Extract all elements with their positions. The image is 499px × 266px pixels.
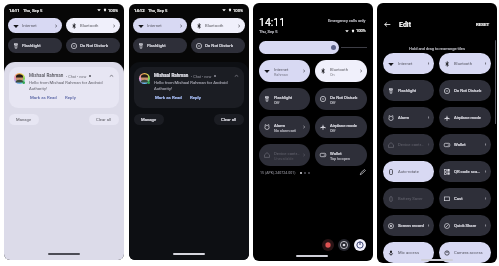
button[interactable]: Bluetooth bbox=[66, 18, 120, 33]
button[interactable]: Flashlight bbox=[259, 88, 310, 110]
staticText: Mishaal Rahman bbox=[154, 73, 189, 78]
button[interactable]: Mishaal Rahman bbox=[134, 67, 244, 108]
staticText: Alarm bbox=[274, 123, 286, 128]
staticText: Edit bbox=[399, 21, 411, 29]
button[interactable]: Flashlight bbox=[383, 80, 434, 101]
staticText: Alarm bbox=[398, 115, 410, 120]
staticText: Cast bbox=[454, 196, 463, 201]
button[interactable]: Do Not Disturb bbox=[66, 38, 120, 53]
button[interactable]: Mark as Read bbox=[155, 95, 182, 100]
staticText: Wallet bbox=[330, 151, 342, 156]
button[interactable]: Internet bbox=[383, 53, 434, 74]
button[interactable]: Record bbox=[322, 239, 334, 251]
staticText: Flashlight bbox=[274, 95, 293, 100]
staticText: Bluetooth bbox=[80, 23, 99, 28]
staticText: • Chat • now bbox=[66, 74, 87, 78]
button[interactable]: Flashlight bbox=[133, 38, 187, 53]
button[interactable]: Airplane mode bbox=[315, 116, 367, 138]
staticText: Internet bbox=[398, 61, 413, 66]
button[interactable]: Power bbox=[354, 239, 366, 251]
button[interactable]: Alarm bbox=[383, 107, 434, 128]
staticText: Clear all bbox=[96, 117, 112, 122]
button[interactable]: Screen record bbox=[383, 215, 434, 236]
button[interactable]: Clear all bbox=[89, 114, 119, 125]
button[interactable]: Reply bbox=[190, 95, 201, 100]
staticText: Reply bbox=[190, 95, 201, 100]
button[interactable]: Bluetooth bbox=[315, 60, 367, 82]
button[interactable]: Battery Saver bbox=[383, 188, 434, 209]
staticText: Battery Saver bbox=[398, 196, 423, 201]
button[interactable]: Internet bbox=[133, 18, 187, 33]
staticText: Do Not Disturb bbox=[330, 95, 358, 100]
staticText: Mark as Read bbox=[155, 95, 182, 100]
staticText: Wallet bbox=[454, 142, 466, 147]
staticText: Mishaal Rahman bbox=[29, 73, 64, 78]
staticText: QR code sca… bbox=[454, 169, 481, 174]
button[interactable]: Airplane mode bbox=[439, 107, 491, 128]
button[interactable]: Bluetooth bbox=[439, 53, 491, 74]
staticText: Tap to open bbox=[330, 156, 350, 160]
button[interactable]: Do Not Disturb bbox=[439, 80, 491, 101]
staticText: 100% bbox=[108, 8, 119, 13]
button[interactable]: Quick Share bbox=[439, 215, 491, 236]
staticText: No alarm set bbox=[274, 128, 296, 132]
button[interactable]: Bluetooth bbox=[191, 18, 245, 33]
staticText: 14:12 bbox=[134, 8, 145, 13]
button[interactable]: Cast bbox=[439, 188, 491, 209]
button[interactable] bbox=[259, 41, 339, 54]
staticText: 100% bbox=[233, 8, 244, 13]
staticText: Off bbox=[330, 100, 336, 104]
staticText: RESET bbox=[476, 22, 490, 27]
button[interactable]: Do Not Disturb bbox=[191, 38, 245, 53]
staticText: Screen record bbox=[398, 223, 424, 228]
button[interactable]: Edit tiles bbox=[359, 169, 366, 176]
staticText: Internet bbox=[274, 67, 289, 72]
button[interactable]: Manage bbox=[9, 114, 39, 125]
staticText: 14:11 bbox=[259, 16, 286, 28]
staticText: Do Not Disturb bbox=[80, 43, 109, 48]
button[interactable]: Mark as Read bbox=[30, 95, 57, 100]
staticText: Airplane mode bbox=[330, 123, 358, 128]
button[interactable]: Wallet bbox=[439, 134, 491, 155]
button[interactable]: Device contr… bbox=[259, 144, 310, 166]
staticText: Quick Share bbox=[454, 223, 477, 228]
button[interactable]: Internet bbox=[8, 18, 62, 33]
button[interactable]: Alarm bbox=[259, 116, 310, 138]
staticText: Thu, Sep 5 bbox=[23, 8, 43, 13]
button[interactable]: Mic access bbox=[383, 242, 434, 263]
staticText: Unavailable bbox=[274, 156, 294, 160]
button[interactable]: Device contr… bbox=[383, 134, 434, 155]
staticText: Hello from Mishaal Rahman for Android Au… bbox=[154, 80, 232, 91]
button[interactable]: Manage bbox=[134, 114, 164, 125]
staticText: Mark as Read bbox=[30, 95, 57, 100]
staticText: Flashlight bbox=[398, 88, 417, 93]
staticText: Clear all bbox=[221, 117, 237, 122]
staticText: Manage bbox=[16, 117, 32, 122]
button[interactable]: Wallet bbox=[315, 144, 367, 166]
button[interactable]: Reply bbox=[65, 95, 76, 100]
button[interactable]: Flashlight bbox=[8, 38, 62, 53]
staticText: Manage bbox=[141, 117, 157, 122]
button[interactable]: Camera access bbox=[439, 242, 491, 263]
staticText: Bluetooth bbox=[205, 23, 224, 28]
staticText: Hold and drag to rearrange tiles bbox=[377, 46, 497, 51]
button[interactable]: QR code sca… bbox=[439, 161, 491, 182]
staticText: 14:11 bbox=[9, 8, 20, 13]
staticText: Flashlight bbox=[147, 43, 166, 48]
button[interactable]: Mishaal Rahman bbox=[9, 67, 119, 108]
staticText: Do Not Disturb bbox=[205, 43, 234, 48]
button[interactable]: Auto-rotate bbox=[383, 161, 434, 182]
staticText: Do Not Disturb bbox=[454, 88, 482, 93]
staticText: Camera access bbox=[454, 250, 483, 255]
staticText: Device contr… bbox=[274, 151, 300, 156]
button[interactable]: Back bbox=[383, 20, 392, 29]
staticText: Device contr… bbox=[398, 142, 424, 147]
staticText: Reply bbox=[65, 95, 76, 100]
button[interactable]: Clear all bbox=[214, 114, 244, 125]
staticText: 15 (APK(.240724.001) bbox=[260, 171, 296, 175]
button[interactable]: Internet bbox=[259, 60, 310, 82]
button[interactable]: Settings bbox=[338, 239, 350, 251]
button[interactable]: Do Not Disturb bbox=[315, 88, 367, 110]
staticText: Mic access bbox=[398, 250, 420, 255]
button[interactable]: RESET bbox=[476, 22, 490, 27]
